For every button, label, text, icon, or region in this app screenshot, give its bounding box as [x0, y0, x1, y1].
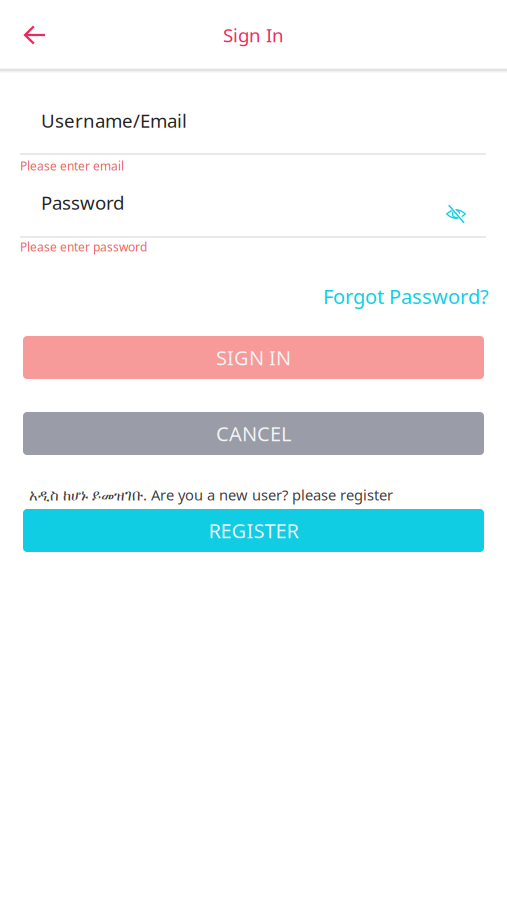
staticText: Forgot Password? [323, 283, 489, 310]
button[interactable]: Show password [436, 194, 476, 234]
staticText: Sign In [223, 23, 284, 47]
staticText: REGISTER [208, 517, 298, 544]
button[interactable]: SIGN IN [23, 336, 484, 379]
staticText: Please enter email [20, 158, 124, 174]
staticText: Username/Email [41, 108, 187, 133]
staticText: Password [41, 190, 124, 215]
button[interactable]: Forgot Password? [323, 280, 489, 313]
button[interactable]: Back [11, 11, 59, 59]
button[interactable]: REGISTER [23, 509, 484, 552]
button[interactable]: CANCEL [23, 412, 484, 455]
staticText: አዲስ ከሆኑ ይመዝገቡ. Are you a new user? pleas… [29, 485, 393, 504]
staticText: Please enter password [20, 239, 147, 255]
staticText: SIGN IN [216, 344, 291, 371]
staticText: CANCEL [216, 420, 291, 447]
